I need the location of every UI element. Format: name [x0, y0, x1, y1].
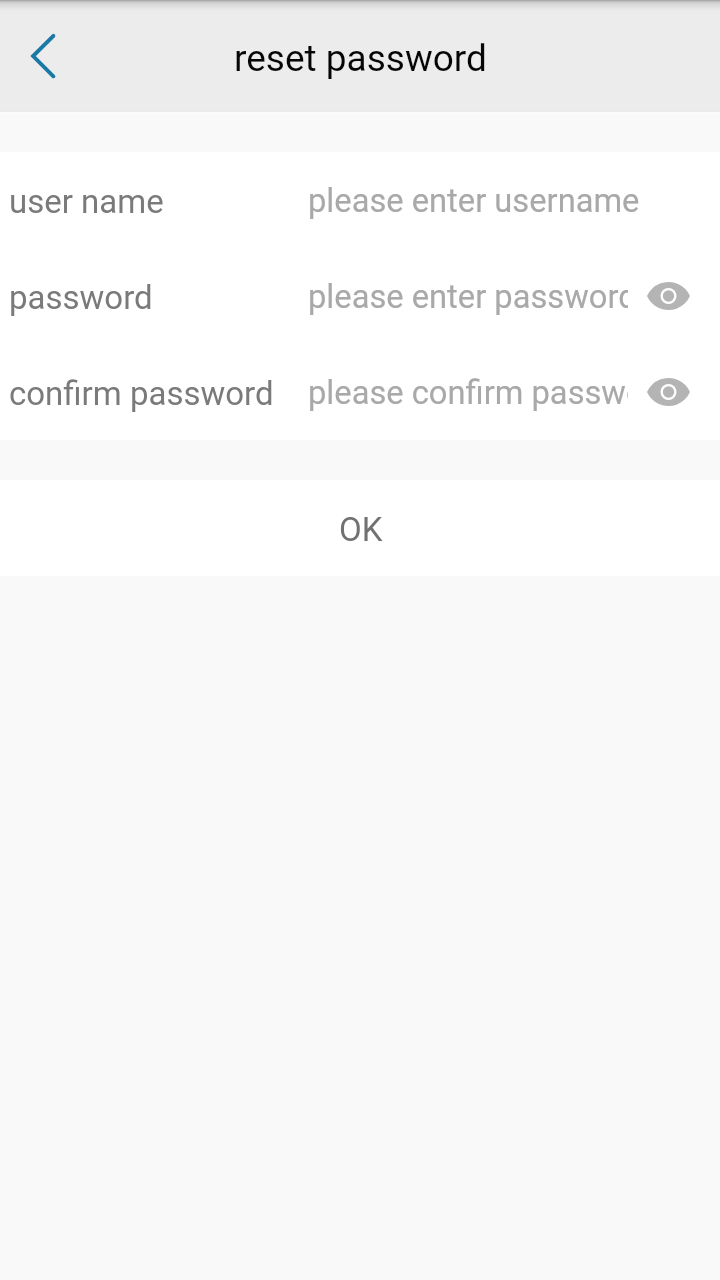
staticText: please enter password [308, 278, 628, 316]
button[interactable]: Back [0, 0, 90, 111]
staticText: OK [339, 510, 383, 549]
staticText: user name [9, 182, 164, 221]
button[interactable]: Show password [640, 268, 696, 324]
button[interactable]: user name [0, 152, 720, 248]
button[interactable]: OK [0, 480, 720, 576]
button[interactable]: confirm password [0, 344, 720, 440]
staticText: please confirm password [308, 374, 628, 412]
staticText: reset password [234, 37, 487, 80]
button[interactable]: Show password [640, 364, 696, 420]
staticText: confirm password [9, 374, 274, 413]
button[interactable]: password [0, 248, 720, 344]
staticText: please enter username [308, 182, 708, 220]
staticText: password [9, 278, 153, 317]
